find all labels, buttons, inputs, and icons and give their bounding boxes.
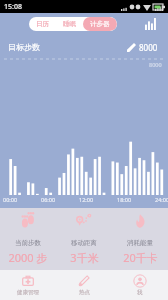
staticText: 热点: [79, 289, 90, 296]
staticText: 消耗能量: [127, 239, 153, 247]
button[interactable]: 睡眠: [56, 17, 83, 31]
button[interactable]: 我: [112, 270, 168, 300]
button[interactable]: 消耗能量: [112, 234, 168, 270]
staticText: 06:00: [41, 196, 56, 203]
staticText: 2000 步: [8, 250, 48, 265]
staticText: 8000: [139, 42, 158, 53]
staticText: 18:00: [117, 196, 132, 203]
button[interactable]: 健康管理: [0, 270, 56, 300]
staticText: 12:00: [79, 196, 94, 203]
staticText: 睡眠: [63, 20, 76, 28]
staticText: 00:00: [3, 196, 18, 203]
staticText: 移动距离: [71, 239, 97, 247]
button[interactable]: 8000: [125, 40, 160, 55]
staticText: 3千米: [70, 250, 99, 265]
button[interactable]: 当前步数: [0, 234, 56, 270]
staticText: 我: [137, 289, 143, 296]
staticText: 目标步数: [8, 42, 40, 52]
button[interactable]: 计步器: [83, 17, 117, 31]
staticText: 20千卡: [123, 250, 158, 265]
button[interactable]: 统计图表: [140, 13, 162, 35]
staticText: 健康管理: [17, 289, 39, 296]
staticText: 8000: [149, 61, 162, 68]
staticText: 日历: [36, 20, 49, 28]
staticText: 计步器: [90, 20, 110, 28]
staticText: 24:00: [155, 196, 168, 203]
staticText: 当前步数: [15, 239, 41, 247]
staticText: 15:08: [4, 2, 22, 12]
button[interactable]: 日历: [29, 17, 56, 31]
button[interactable]: 移动距离: [56, 234, 112, 270]
button[interactable]: 热点: [56, 270, 112, 300]
